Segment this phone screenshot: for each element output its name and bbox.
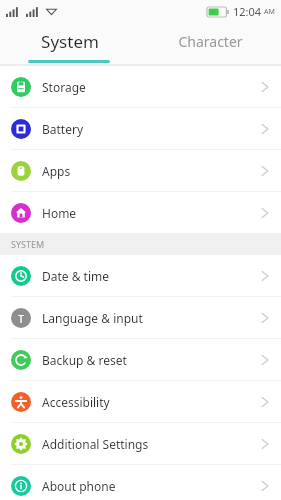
staticText: Language & input <box>42 310 261 326</box>
button[interactable]: Date & time <box>0 255 281 296</box>
staticText: About phone <box>42 478 261 494</box>
button[interactable]: Backup & reset <box>0 339 281 380</box>
button[interactable]: System <box>0 22 140 60</box>
staticText: T <box>18 311 25 326</box>
staticText: SYSTEM <box>11 238 45 250</box>
button[interactable]: Battery <box>0 108 281 149</box>
button[interactable]: Storage <box>0 66 281 107</box>
staticText: Storage <box>42 79 261 95</box>
button[interactable]: Apps <box>0 150 281 191</box>
staticText: Battery <box>42 121 261 137</box>
staticText: Apps <box>42 163 261 179</box>
staticText: Additional Settings <box>42 436 261 452</box>
staticText: 12:04 <box>233 4 262 19</box>
button[interactable]: Character <box>140 22 281 60</box>
staticText: Character <box>178 32 243 51</box>
button[interactable]: Additional Settings <box>0 423 281 464</box>
staticText: System <box>41 30 99 53</box>
button[interactable]: Accessibility <box>0 381 281 422</box>
staticText: Date & time <box>42 268 261 284</box>
button[interactable]: T <box>0 297 281 338</box>
staticText: Accessibility <box>42 394 261 410</box>
staticText: Home <box>42 205 261 221</box>
staticText: AM <box>264 7 275 17</box>
button[interactable]: Home <box>0 192 281 233</box>
button[interactable]: About phone <box>0 465 281 500</box>
staticText: Backup & reset <box>42 352 261 368</box>
